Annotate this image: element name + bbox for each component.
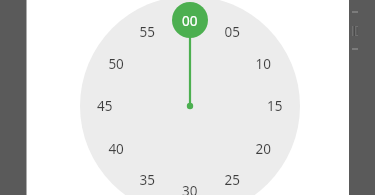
button[interactable]: Minute picker clock face [0, 0, 375, 195]
